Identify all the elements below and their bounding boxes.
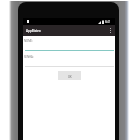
- button[interactable]: More options: [105, 25, 115, 36]
- staticText: AppBistro: [26, 29, 41, 33]
- button[interactable]: OK: [58, 71, 81, 80]
- staticText: NOME:: [24, 39, 33, 43]
- staticText: 8:41: [105, 20, 111, 24]
- staticText: OK: [68, 75, 72, 79]
- staticText: SENHA:: [24, 55, 34, 59]
